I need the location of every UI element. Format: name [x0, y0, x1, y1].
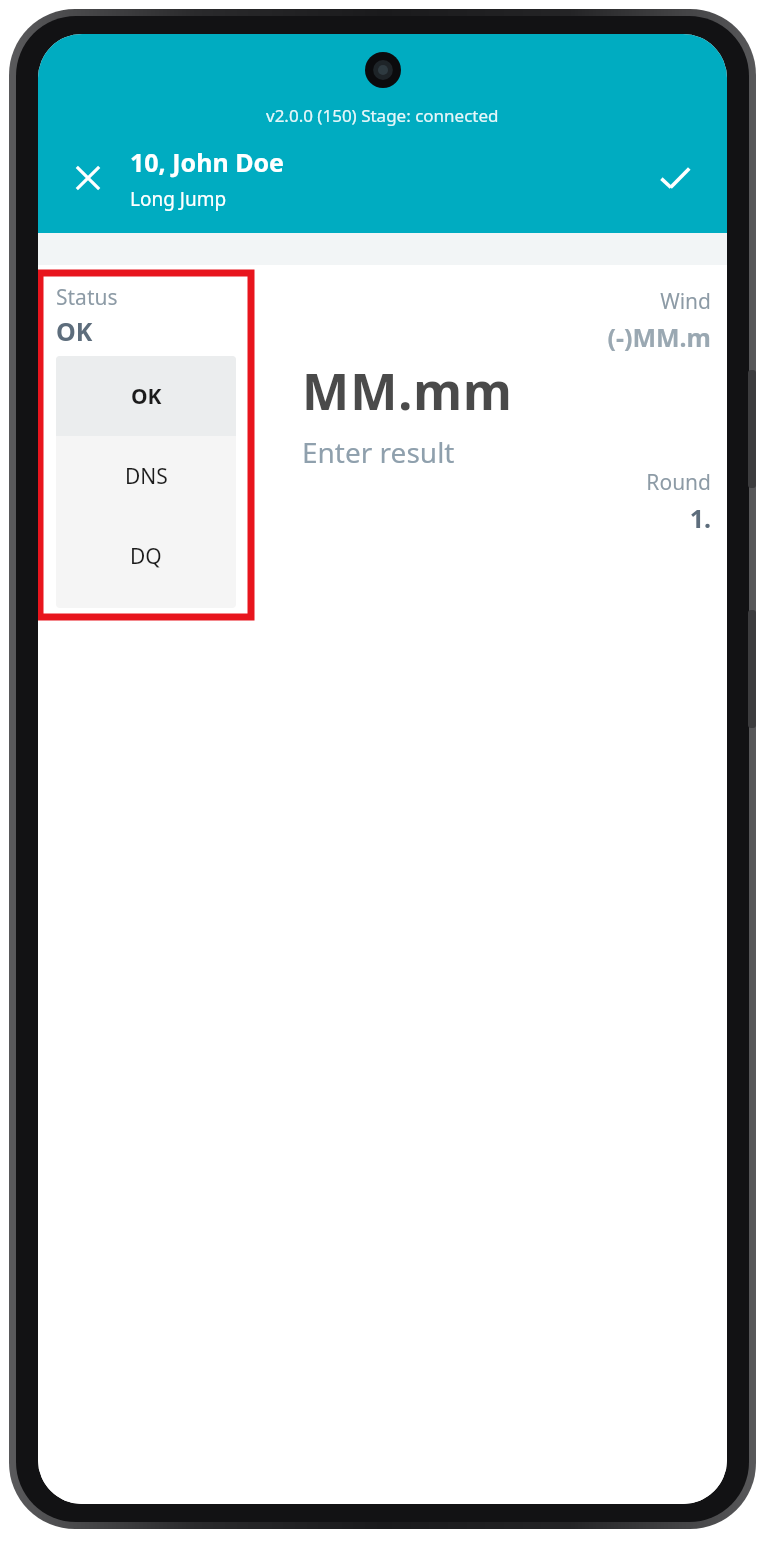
staticText: DQ	[130, 542, 162, 571]
button[interactable]: MM.mm	[302, 357, 513, 425]
button[interactable]: OK	[56, 356, 236, 436]
button[interactable]: Confirm	[645, 148, 705, 208]
staticText: 10, John Doe	[130, 145, 284, 179]
staticText: OK	[56, 314, 93, 348]
staticText: v2.0.0 (150) Stage: connected	[266, 104, 499, 127]
staticText: Long Jump	[130, 186, 227, 212]
staticText: Enter result	[302, 433, 455, 471]
button[interactable]: Close	[60, 150, 116, 206]
staticText: (-)MM.m	[607, 320, 711, 354]
button[interactable]: DQ	[56, 516, 236, 596]
staticText: Status	[56, 283, 118, 312]
staticText: MM.mm	[302, 357, 513, 425]
staticText: 1.	[689, 501, 711, 535]
button[interactable]: DNS	[56, 436, 236, 516]
staticText: Wind	[660, 287, 711, 316]
staticText: Round	[646, 468, 711, 497]
staticText: DNS	[125, 462, 168, 491]
staticText: OK	[131, 382, 162, 411]
